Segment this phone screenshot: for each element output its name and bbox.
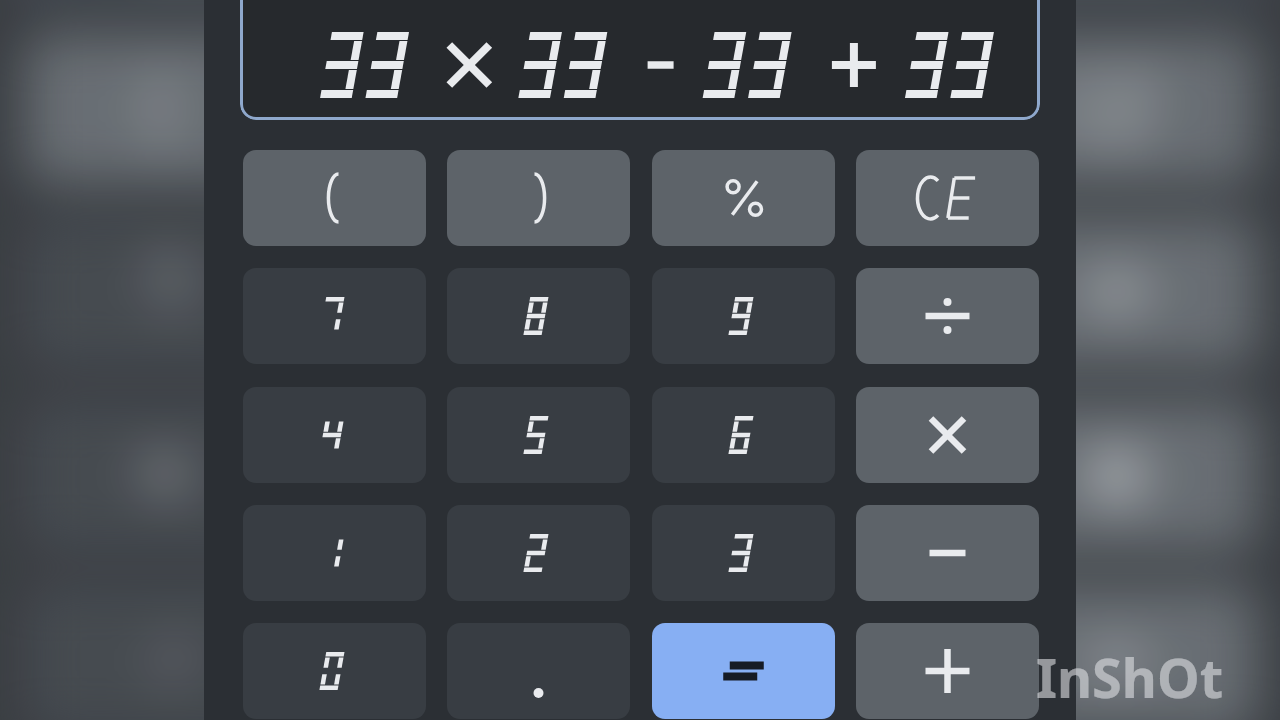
button[interactable] [25, 34, 308, 183]
button[interactable] [447, 268, 630, 364]
button[interactable] [25, 585, 308, 720]
button[interactable] [341, 402, 624, 551]
button[interactable] [240, 0, 1040, 120]
button[interactable] [243, 623, 426, 719]
button[interactable] [975, 402, 1258, 551]
button[interactable] [659, 402, 942, 551]
button[interactable] [447, 623, 630, 719]
button[interactable] [447, 505, 630, 601]
button[interactable] [856, 268, 1039, 364]
button[interactable] [447, 150, 630, 246]
button[interactable] [341, 217, 624, 366]
staticText: InShOt [1036, 640, 1224, 714]
button[interactable] [652, 268, 835, 364]
button[interactable] [25, 217, 308, 366]
button[interactable] [856, 387, 1039, 483]
button[interactable] [652, 150, 835, 246]
button[interactable] [659, 34, 942, 183]
button[interactable] [856, 623, 1039, 719]
button[interactable] [856, 505, 1039, 601]
button[interactable] [975, 217, 1258, 366]
button[interactable] [447, 387, 630, 483]
button[interactable] [652, 623, 835, 719]
button[interactable] [341, 34, 624, 183]
button[interactable] [243, 505, 426, 601]
button[interactable] [341, 585, 624, 720]
button[interactable] [243, 150, 426, 246]
button[interactable] [243, 268, 426, 364]
button[interactable] [975, 34, 1258, 183]
button[interactable] [659, 585, 942, 720]
button[interactable] [975, 585, 1258, 720]
button[interactable] [243, 387, 426, 483]
button[interactable] [652, 505, 835, 601]
button[interactable] [25, 402, 308, 551]
button[interactable] [856, 150, 1039, 246]
button[interactable] [659, 217, 942, 366]
button[interactable] [652, 387, 835, 483]
